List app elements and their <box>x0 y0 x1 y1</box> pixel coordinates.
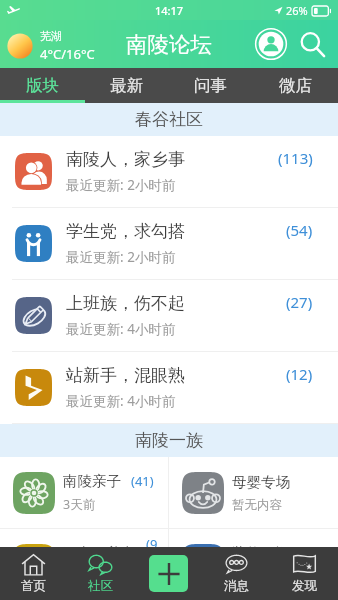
staticText: 3天前 <box>63 496 96 513</box>
staticText: 消息 <box>224 578 249 594</box>
staticText: 最近更新: 2小时前 <box>66 176 176 194</box>
staticText: 学生党，求勾搭 <box>66 221 185 242</box>
staticText: 南陵一族 <box>135 430 203 451</box>
staticText: 南陵亲子 <box>63 472 121 490</box>
staticText: 买车，养车 <box>63 544 136 547</box>
staticText: (54) <box>286 220 313 240</box>
staticText: (98) <box>146 535 164 547</box>
button[interactable]: 学生党，求勾搭 <box>0 208 338 279</box>
button[interactable]: Post <box>149 555 188 592</box>
staticText: 暂无内容 <box>232 497 282 513</box>
staticText: 芜湖 <box>40 29 62 43</box>
staticText: 站新手，混眼熟 <box>66 365 185 386</box>
button[interactable]: 问事 <box>168 68 253 103</box>
button[interactable]: 买车，养车 <box>0 529 168 547</box>
staticText: (12) <box>286 364 313 384</box>
button[interactable]: 版块 <box>0 68 84 103</box>
staticText: 14:17 <box>155 3 184 18</box>
button[interactable]: 南陵亲子 <box>0 457 168 528</box>
staticText: 最近更新: 2小时前 <box>66 248 176 266</box>
staticText: 4°C/16°C <box>40 45 95 63</box>
staticText: 装修日记 <box>232 544 290 547</box>
staticText: (113) <box>278 148 313 168</box>
button[interactable]: Search <box>294 26 330 62</box>
button[interactable]: 首页 <box>0 547 67 600</box>
staticText: 上班族，伤不起 <box>66 293 185 314</box>
staticText: 版块 <box>26 75 59 96</box>
staticText: 春谷社区 <box>135 109 203 130</box>
button[interactable]: Profile <box>252 25 290 63</box>
button[interactable]: 南陵人，家乡事 <box>0 136 338 207</box>
staticText: 26% <box>286 3 308 18</box>
staticText: 母婴专场 <box>232 473 290 491</box>
staticText: 最近更新: 4小时前 <box>66 392 176 410</box>
staticText: 最近更新: 4小时前 <box>66 320 176 338</box>
staticText: 社区 <box>88 578 113 594</box>
button[interactable]: 最新 <box>84 68 168 103</box>
staticText: 发现 <box>292 578 317 594</box>
staticText: (41) <box>131 472 154 490</box>
button[interactable]: 母婴专场 <box>169 457 338 528</box>
staticText: 南陵论坛 <box>126 31 212 58</box>
button[interactable]: 微店 <box>253 68 338 103</box>
button[interactable]: 站新手，混眼熟 <box>0 352 338 423</box>
staticText: (27) <box>286 292 313 312</box>
staticText: 微店 <box>279 75 312 96</box>
button[interactable]: 消息 <box>202 547 270 600</box>
staticText: 首页 <box>21 578 46 594</box>
button[interactable]: 社区 <box>67 547 134 600</box>
staticText: 南陵人，家乡事 <box>66 149 185 170</box>
staticText: 问事 <box>194 75 227 96</box>
button[interactable]: 发现 <box>270 547 338 600</box>
button[interactable]: 芜湖 <box>6 29 95 63</box>
button[interactable]: 装修日记 <box>169 529 338 547</box>
staticText: 最新 <box>110 75 143 96</box>
button[interactable]: 上班族，伤不起 <box>0 280 338 351</box>
